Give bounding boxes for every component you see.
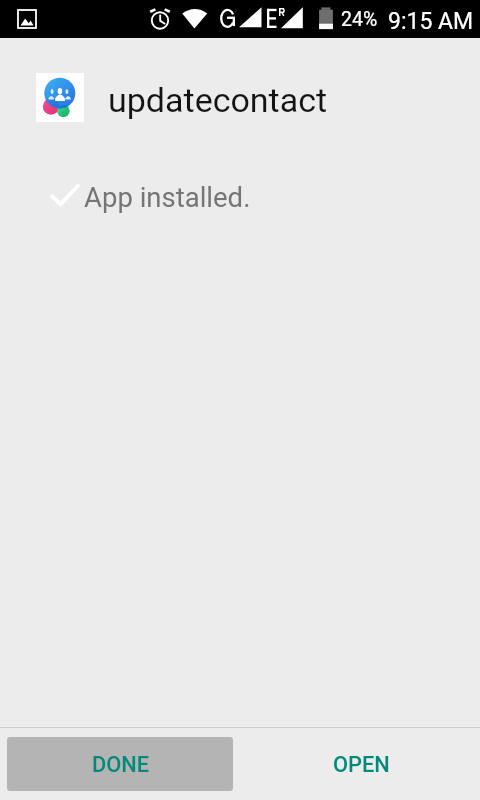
button[interactable]: OPEN: [247, 737, 473, 791]
staticText: App installed.: [84, 181, 251, 213]
button[interactable]: DONE: [7, 737, 233, 791]
staticText: DONE: [92, 752, 150, 778]
other: Installed: [46, 178, 86, 218]
staticText: OPEN: [333, 752, 390, 778]
staticText: updatecontact: [108, 80, 328, 120]
staticText: 24%: [341, 8, 378, 31]
staticText: 9:15 AM: [388, 8, 474, 35]
